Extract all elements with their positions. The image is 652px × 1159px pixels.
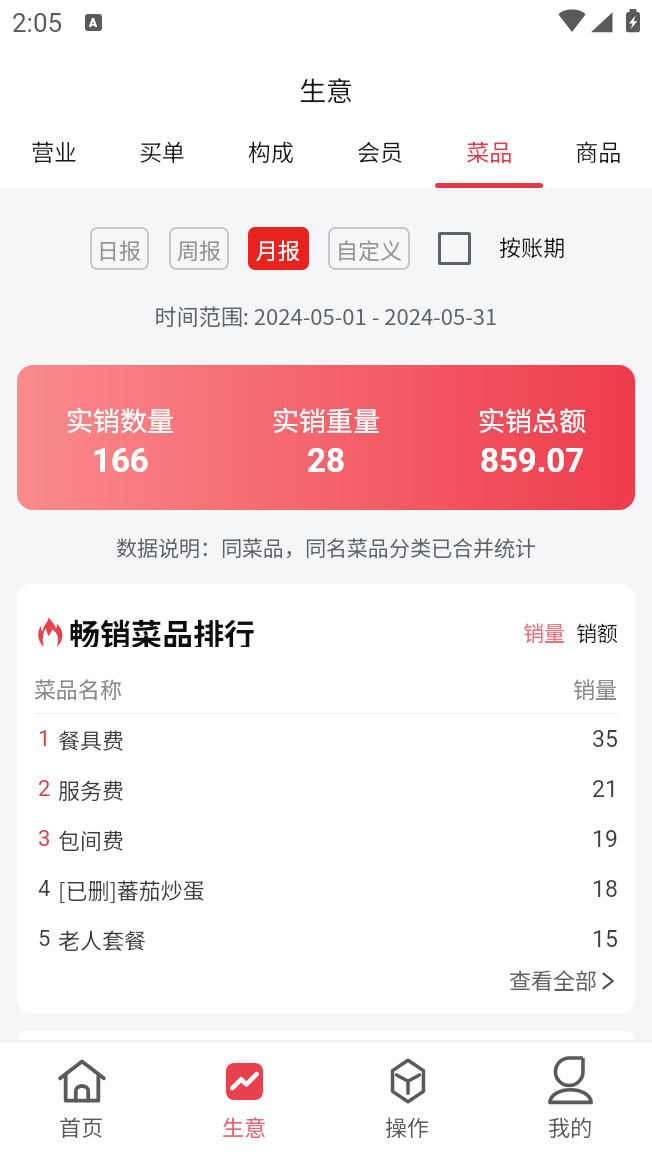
staticText: 自定义 [336,233,403,265]
staticText: 构成 [248,134,294,167]
staticText: 首页 [59,1110,104,1142]
staticText: 166 [92,441,149,480]
staticText: 生意 [299,70,353,109]
staticText: 买单 [139,134,185,167]
staticText: 菜品 [466,134,512,167]
button[interactable]: 按账期 [438,232,471,265]
staticText: A [89,16,98,30]
button[interactable]: 2 [34,764,618,814]
staticText: 菜品名称 [34,672,123,702]
other: 首页 [59,1059,105,1103]
button[interactable]: 首页 [0,1040,163,1159]
staticText: 5 [38,926,51,952]
button[interactable]: 3 [34,814,618,864]
button[interactable]: 月报 [248,227,309,270]
staticText: 3 [38,826,51,852]
button[interactable]: 1 [34,714,618,764]
staticText: 数据说明：同菜品，同名菜品分类已合并统计 [0,532,652,562]
staticText: 营业 [31,134,77,167]
button[interactable]: 销额 [576,617,618,647]
staticText: 畅销菜品排行 [69,610,255,647]
staticText: 月报 [256,233,301,265]
staticText: 4 [38,876,51,902]
staticText: 生意 [222,1110,267,1142]
staticText: 1 [38,726,51,752]
button[interactable]: 日报 [90,227,149,270]
staticText: 2:05 [12,8,63,38]
button[interactable]: 操作 [326,1040,489,1159]
staticText: 会员 [357,134,403,167]
button[interactable]: 自定义 [328,227,410,270]
staticText: 15 [592,926,618,953]
button[interactable]: 我的 [489,1040,652,1159]
staticText: 我的 [548,1110,593,1142]
staticText: 2 [38,776,51,802]
staticText: 商品 [575,134,621,167]
button[interactable]: 构成 [216,118,325,188]
staticText: 18 [592,876,618,903]
button[interactable]: 商品 [543,118,652,188]
staticText: 28 [307,441,345,480]
staticText: 销量 [573,672,618,702]
other: 生意 [226,1063,263,1100]
button[interactable]: 5 [34,914,618,964]
staticText: 实销重量 [272,400,380,439]
staticText: 21 [592,776,618,803]
button[interactable]: 会员 [325,118,434,188]
staticText: 按账期 [499,230,566,262]
button[interactable]: 生意 [163,1040,326,1159]
button[interactable]: 买单 [108,118,216,188]
staticText: 餐具费 [58,723,125,755]
button[interactable]: 周报 [169,227,229,270]
staticText: 服务费 [58,773,125,805]
staticText: 实销总额 [478,400,586,439]
button[interactable]: 4 [34,864,618,914]
staticText: 实销数量 [66,400,174,439]
staticText: 35 [592,726,618,753]
staticText: 19 [592,826,618,853]
staticText: 操作 [385,1110,430,1142]
staticText: 查看全部 [509,963,598,995]
staticText: 时间范围: 2024-05-01 - 2024-05-31 [0,299,652,331]
button[interactable]: 查看全部 [34,961,618,996]
staticText: 859.07 [480,441,585,480]
staticText: 日报 [97,233,142,265]
button[interactable]: 菜品 [434,118,543,188]
button[interactable]: 销量 [523,617,565,647]
staticText: 周报 [177,233,222,265]
staticText: 包间费 [58,823,125,855]
other: 我的 [549,1058,592,1104]
staticText: [已删]蕃茄炒蛋 [58,873,205,905]
staticText: 老人套餐 [58,923,147,955]
button[interactable]: 营业 [0,118,108,188]
other: 操作 [389,1059,427,1103]
